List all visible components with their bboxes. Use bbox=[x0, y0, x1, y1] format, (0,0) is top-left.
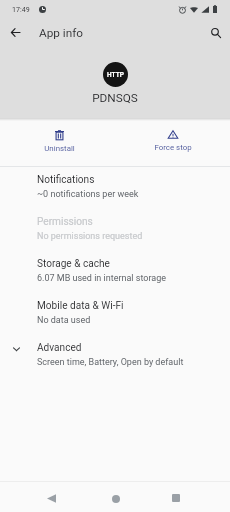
staticText: Force stop bbox=[154, 143, 192, 152]
button[interactable]: Recent apps bbox=[159, 483, 192, 512]
button[interactable]: Mobile data & Wi-Fi bbox=[0, 293, 230, 335]
staticText: Advanced bbox=[37, 342, 82, 354]
staticText: 6.07 MB used in internal storage bbox=[37, 273, 166, 284]
button[interactable]: Search bbox=[201, 18, 230, 47]
staticText: Mobile data & Wi-Fi bbox=[37, 300, 124, 312]
button[interactable]: Notifications bbox=[0, 167, 230, 209]
button[interactable]: Uninstall bbox=[2, 118, 116, 166]
button[interactable]: Storage & cache bbox=[0, 251, 230, 293]
button[interactable]: Home bbox=[99, 484, 132, 512]
staticText: No permissions requested bbox=[37, 231, 143, 242]
staticText: PDNSQS bbox=[92, 91, 138, 105]
staticText: Storage & cache bbox=[37, 258, 110, 270]
button[interactable]: Force stop bbox=[116, 118, 230, 166]
staticText: Notifications bbox=[37, 174, 95, 186]
button[interactable]: Back bbox=[0, 18, 31, 47]
button[interactable]: Permissions bbox=[0, 209, 230, 251]
staticText: App info bbox=[39, 26, 84, 40]
button[interactable]: Back bbox=[35, 483, 68, 512]
staticText: No data used bbox=[37, 315, 91, 326]
staticText: Uninstall bbox=[44, 144, 75, 153]
staticText: Screen time, Battery, Open by default bbox=[37, 357, 184, 368]
staticText: ~0 notifications per week bbox=[37, 189, 139, 200]
staticText: 17:49 bbox=[12, 5, 30, 13]
staticText: HTTP bbox=[107, 71, 124, 79]
button[interactable]: Advanced bbox=[0, 335, 230, 377]
staticText: Permissions bbox=[37, 216, 93, 228]
